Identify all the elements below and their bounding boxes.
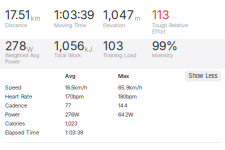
staticText: Speed [5, 84, 21, 91]
staticText: Distance [5, 22, 27, 28]
staticText: W [26, 45, 33, 53]
staticText: 170bpm [65, 93, 84, 100]
staticText: 1:03:39 [54, 8, 94, 22]
staticText: Cadence [5, 102, 27, 109]
staticText: Training Load [103, 52, 136, 58]
staticText: 16.5km/h [65, 84, 87, 91]
staticText: 180bpm [118, 93, 137, 100]
staticText: Power [5, 111, 20, 118]
staticText: 642W [118, 111, 133, 118]
staticText: Elapsed Time [5, 129, 39, 136]
staticText: 278 [5, 39, 26, 53]
staticText: 113 [152, 8, 169, 22]
staticText: Show Less [188, 72, 217, 79]
staticText: Heart Rate [5, 93, 32, 100]
staticText: 99% [152, 39, 178, 53]
staticText: 276W [65, 111, 79, 118]
staticText: Calories [5, 120, 25, 127]
staticText: m [134, 14, 140, 22]
staticText: 65.9km/h [118, 84, 142, 91]
staticText: 103 [103, 39, 123, 53]
staticText: Tough Relative Effort [152, 22, 188, 35]
staticText: 1:03:39 [65, 129, 83, 136]
staticText: Moving Time [54, 22, 86, 28]
staticText: kJ [84, 45, 92, 53]
staticText: 1,056 [54, 39, 84, 53]
staticText: 144 [118, 102, 128, 109]
staticText: 1,047 [103, 8, 134, 22]
staticText: 77 [65, 102, 71, 109]
button[interactable]: Show Less [185, 70, 221, 81]
staticText: Intensity [152, 52, 173, 58]
staticText: Max [118, 73, 129, 79]
staticText: Elevation [103, 22, 125, 28]
staticText: 17.51 [5, 8, 30, 22]
staticText: km [30, 14, 40, 22]
staticText: Total Work [54, 52, 81, 58]
staticText: Avg [65, 73, 75, 79]
staticText: Weighted Avg Power [5, 52, 39, 65]
staticText: 1,023 [65, 120, 77, 127]
